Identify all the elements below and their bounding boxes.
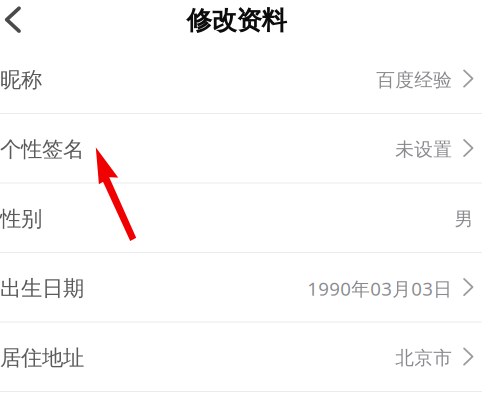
button[interactable]: Back <box>0 0 43 44</box>
staticText: 性别 <box>0 206 42 232</box>
staticText: 个性签名 <box>0 136 84 162</box>
button[interactable]: 个性签名 <box>0 114 482 182</box>
staticText: 男 <box>454 207 473 230</box>
staticText: 百度经验 <box>376 68 452 91</box>
button[interactable]: 居住地址 <box>0 322 482 391</box>
staticText: 昵称 <box>0 67 42 93</box>
staticText: 居住地址 <box>0 345 84 371</box>
button[interactable]: 出生日期 <box>0 253 482 321</box>
staticText: 未设置 <box>395 138 452 161</box>
staticText: 修改资料 <box>186 5 286 36</box>
staticText: 北京市 <box>395 346 452 369</box>
staticText: 1990年03月03日 <box>307 276 452 301</box>
button[interactable]: 性别 <box>0 183 482 252</box>
staticText: 出生日期 <box>0 275 84 301</box>
button[interactable]: 昵称 <box>0 44 482 113</box>
